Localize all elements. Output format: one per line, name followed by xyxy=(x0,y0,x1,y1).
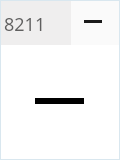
button[interactable]: En dash glyph preview xyxy=(71,1,119,45)
button[interactable]: 8211 xyxy=(1,1,71,45)
other: En dash, large preview xyxy=(1,45,119,159)
staticText: 8211 xyxy=(4,12,46,37)
